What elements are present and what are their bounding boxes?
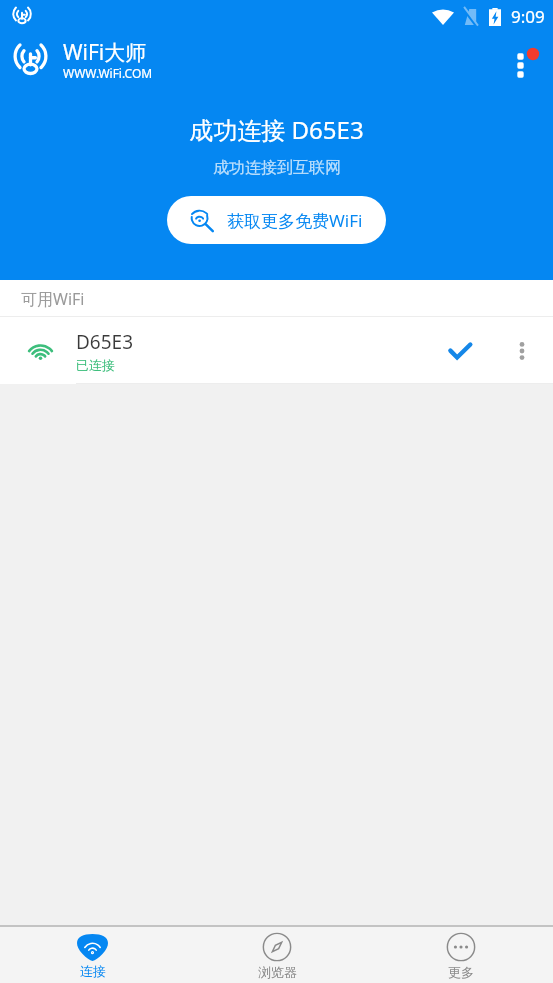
staticText: 可用WiFi <box>21 288 85 310</box>
staticText: 9:09 <box>511 5 545 28</box>
button[interactable]: More options <box>497 36 553 92</box>
staticText: 已连接 <box>76 357 115 373</box>
staticText: 更多 <box>448 964 474 980</box>
staticText: 连接 <box>80 963 106 979</box>
staticText: 获取更多免费WiFi <box>227 209 363 232</box>
button[interactable]: 获取更多免费WiFi <box>167 196 386 244</box>
button[interactable]: 浏览器 <box>185 927 369 983</box>
staticText: 浏览器 <box>258 964 297 980</box>
staticText: WiFi大师 <box>63 38 147 67</box>
staticText: D65E3 <box>76 329 134 355</box>
staticText: 成功连接 D65E3 <box>189 113 364 146</box>
button[interactable]: 更多 <box>369 927 553 983</box>
button[interactable]: D65E3 <box>0 317 553 384</box>
staticText: 成功连接到互联网 <box>213 158 341 178</box>
button[interactable]: Network options <box>504 333 540 369</box>
staticText: WWW.WiFi.COM <box>63 65 153 81</box>
button[interactable]: 连接 <box>0 927 185 983</box>
